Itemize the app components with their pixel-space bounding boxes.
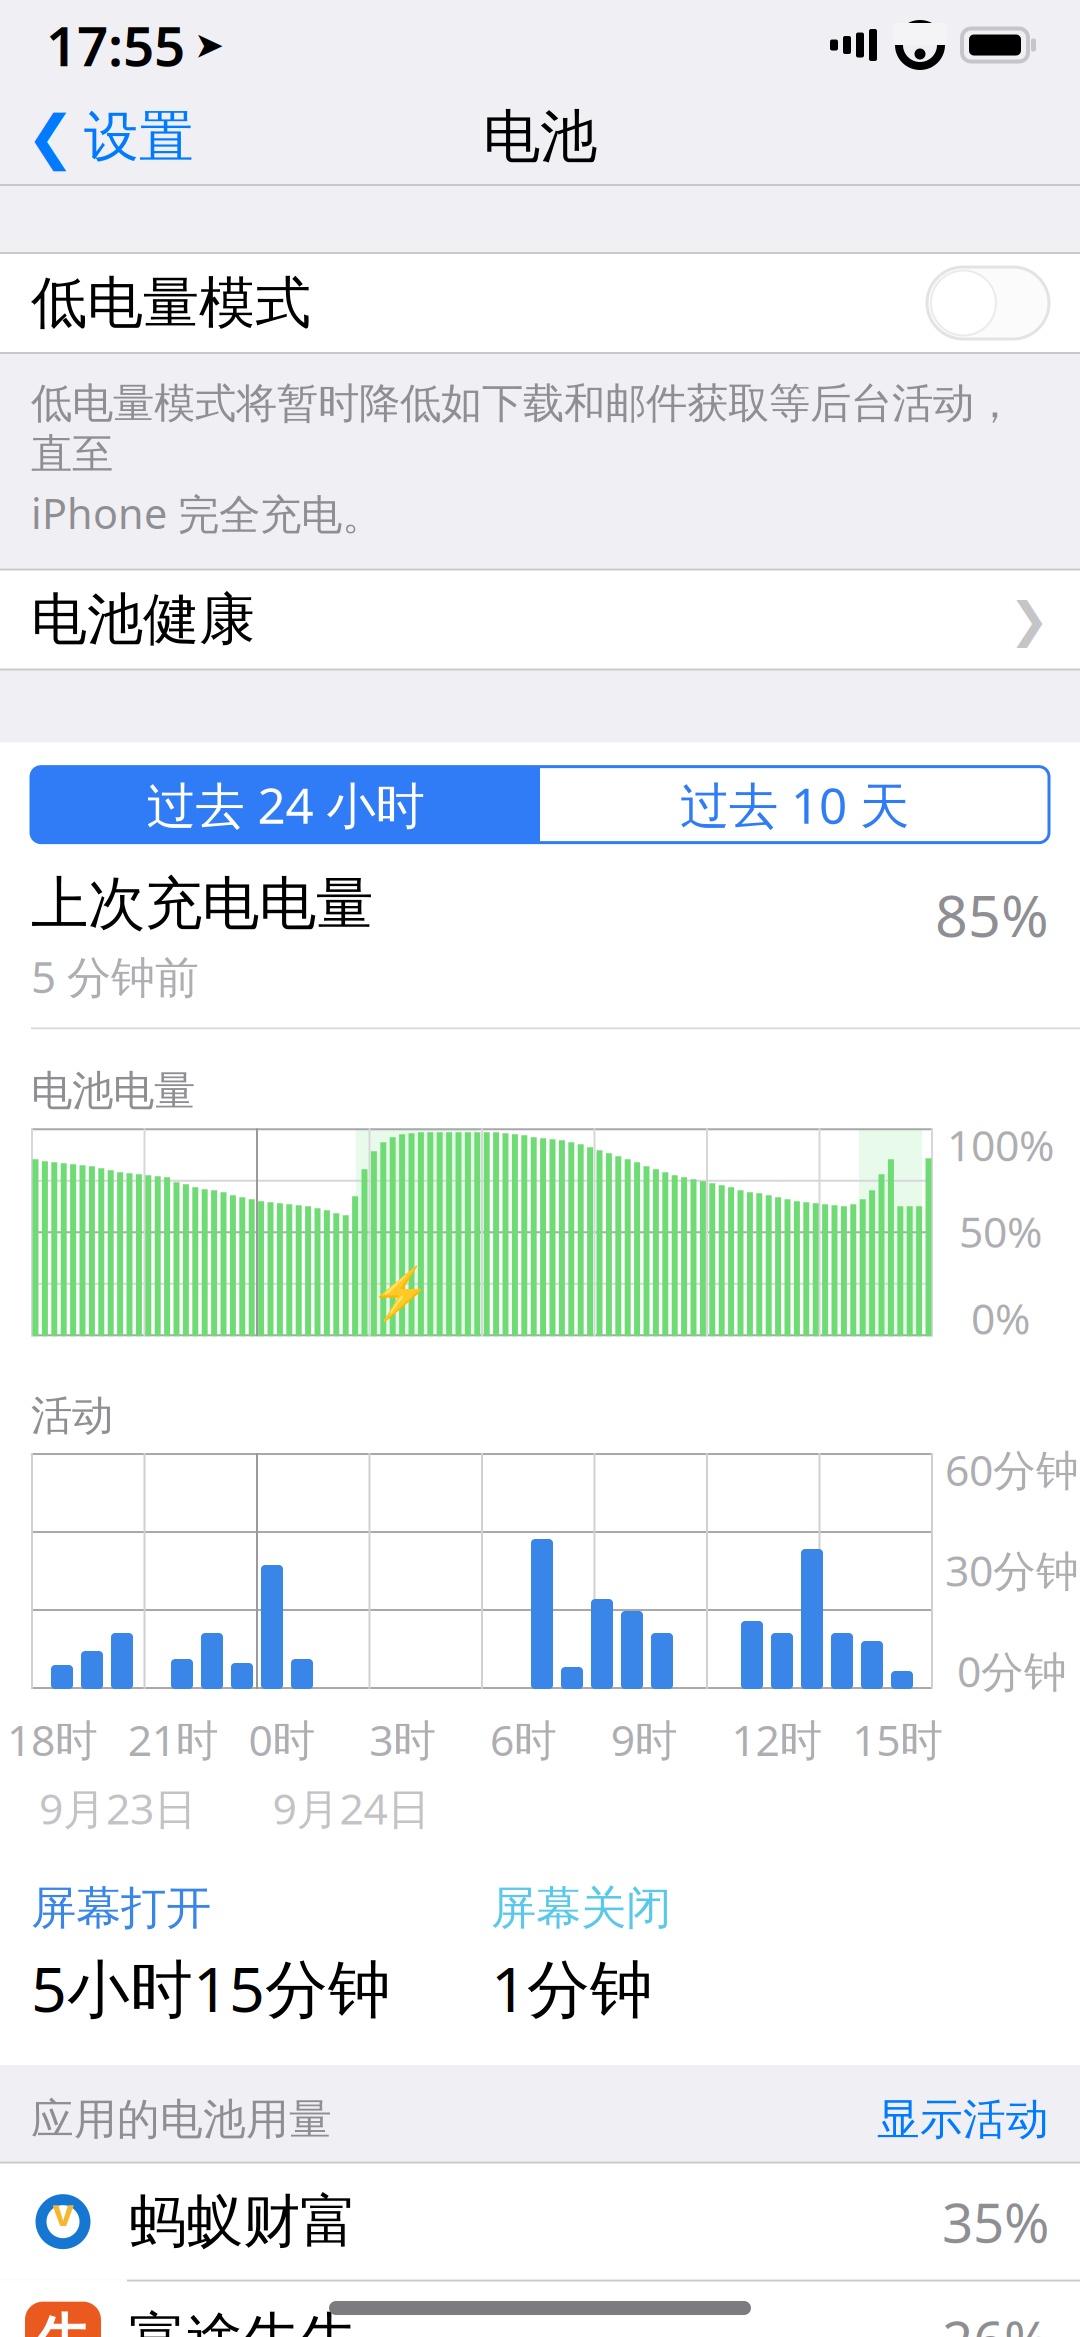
staticText: 低电量模式将暂时降低如下载和邮件获取等后台活动，直至	[31, 378, 1015, 479]
staticText: 17:55	[46, 9, 185, 81]
staticText: 5小时15分钟	[31, 1946, 391, 2029]
staticText: 应用的电池用量	[31, 2093, 332, 2146]
staticText: 9时	[611, 1711, 678, 1768]
staticText: ➤	[194, 25, 224, 65]
staticText: 0分钟	[957, 1642, 1067, 1699]
button[interactable]: ❮	[0, 91, 214, 183]
staticText: 9月24日	[272, 1780, 430, 1836]
button[interactable]: 低电量模式	[0, 254, 1080, 352]
staticText: 85%	[935, 877, 1049, 953]
staticText: 电池健康	[31, 585, 255, 654]
staticText: 1分钟	[491, 1946, 653, 2029]
staticText: 100%	[947, 1116, 1054, 1173]
staticText: 上次充电电量	[31, 869, 373, 939]
staticText: 21时	[128, 1711, 219, 1768]
staticText: 15时	[852, 1711, 943, 1768]
staticText: 富途牛牛	[129, 2304, 357, 2337]
staticText: 电池	[483, 102, 597, 172]
button[interactable]: 电池健康	[0, 571, 1080, 669]
staticText: v	[52, 2187, 73, 2236]
staticText: 过去 10 天	[680, 772, 909, 837]
staticText: ❯	[1009, 592, 1049, 647]
staticText: 5 分钟前	[31, 947, 199, 1005]
staticText: 电池电量	[31, 1065, 195, 1116]
button[interactable]: 过去 24 小时	[31, 767, 540, 843]
staticText: 60分钟	[945, 1441, 1079, 1498]
staticText: 活动	[31, 1390, 113, 1441]
staticText: 过去 24 小时	[146, 772, 424, 837]
staticText: 3时	[369, 1711, 436, 1768]
button[interactable]: 显示活动	[877, 2093, 1049, 2146]
staticText: 12时	[731, 1711, 822, 1768]
staticText: 18时	[7, 1711, 98, 1768]
staticText: 低电量模式	[31, 269, 311, 337]
staticText: 35%	[942, 2185, 1049, 2258]
staticText: 0时	[248, 1711, 315, 1768]
staticText: 牛	[36, 2307, 89, 2337]
staticText: 显示活动	[877, 2093, 1049, 2146]
staticText: 26%	[942, 2303, 1049, 2337]
button[interactable]: v	[0, 2164, 1080, 2280]
staticText: 蚂蚁财富	[129, 2186, 357, 2257]
button[interactable]: 牛	[0, 2282, 1080, 2337]
staticText: 6时	[490, 1711, 557, 1768]
staticText: 0%	[971, 1290, 1030, 1346]
staticText: 9月23日	[39, 1780, 197, 1836]
staticText: 设置	[84, 103, 194, 170]
button[interactable]: 过去 10 天	[540, 767, 1049, 843]
staticText: 屏幕打开	[31, 1880, 211, 1936]
staticText: 屏幕关闭	[491, 1880, 671, 1936]
staticText: 50%	[959, 1203, 1042, 1260]
staticText: iPhone 完全充电。	[31, 485, 383, 541]
staticText: ❮	[26, 104, 75, 170]
staticText: ⚡	[369, 1264, 432, 1322]
staticText: 30分钟	[945, 1542, 1079, 1598]
